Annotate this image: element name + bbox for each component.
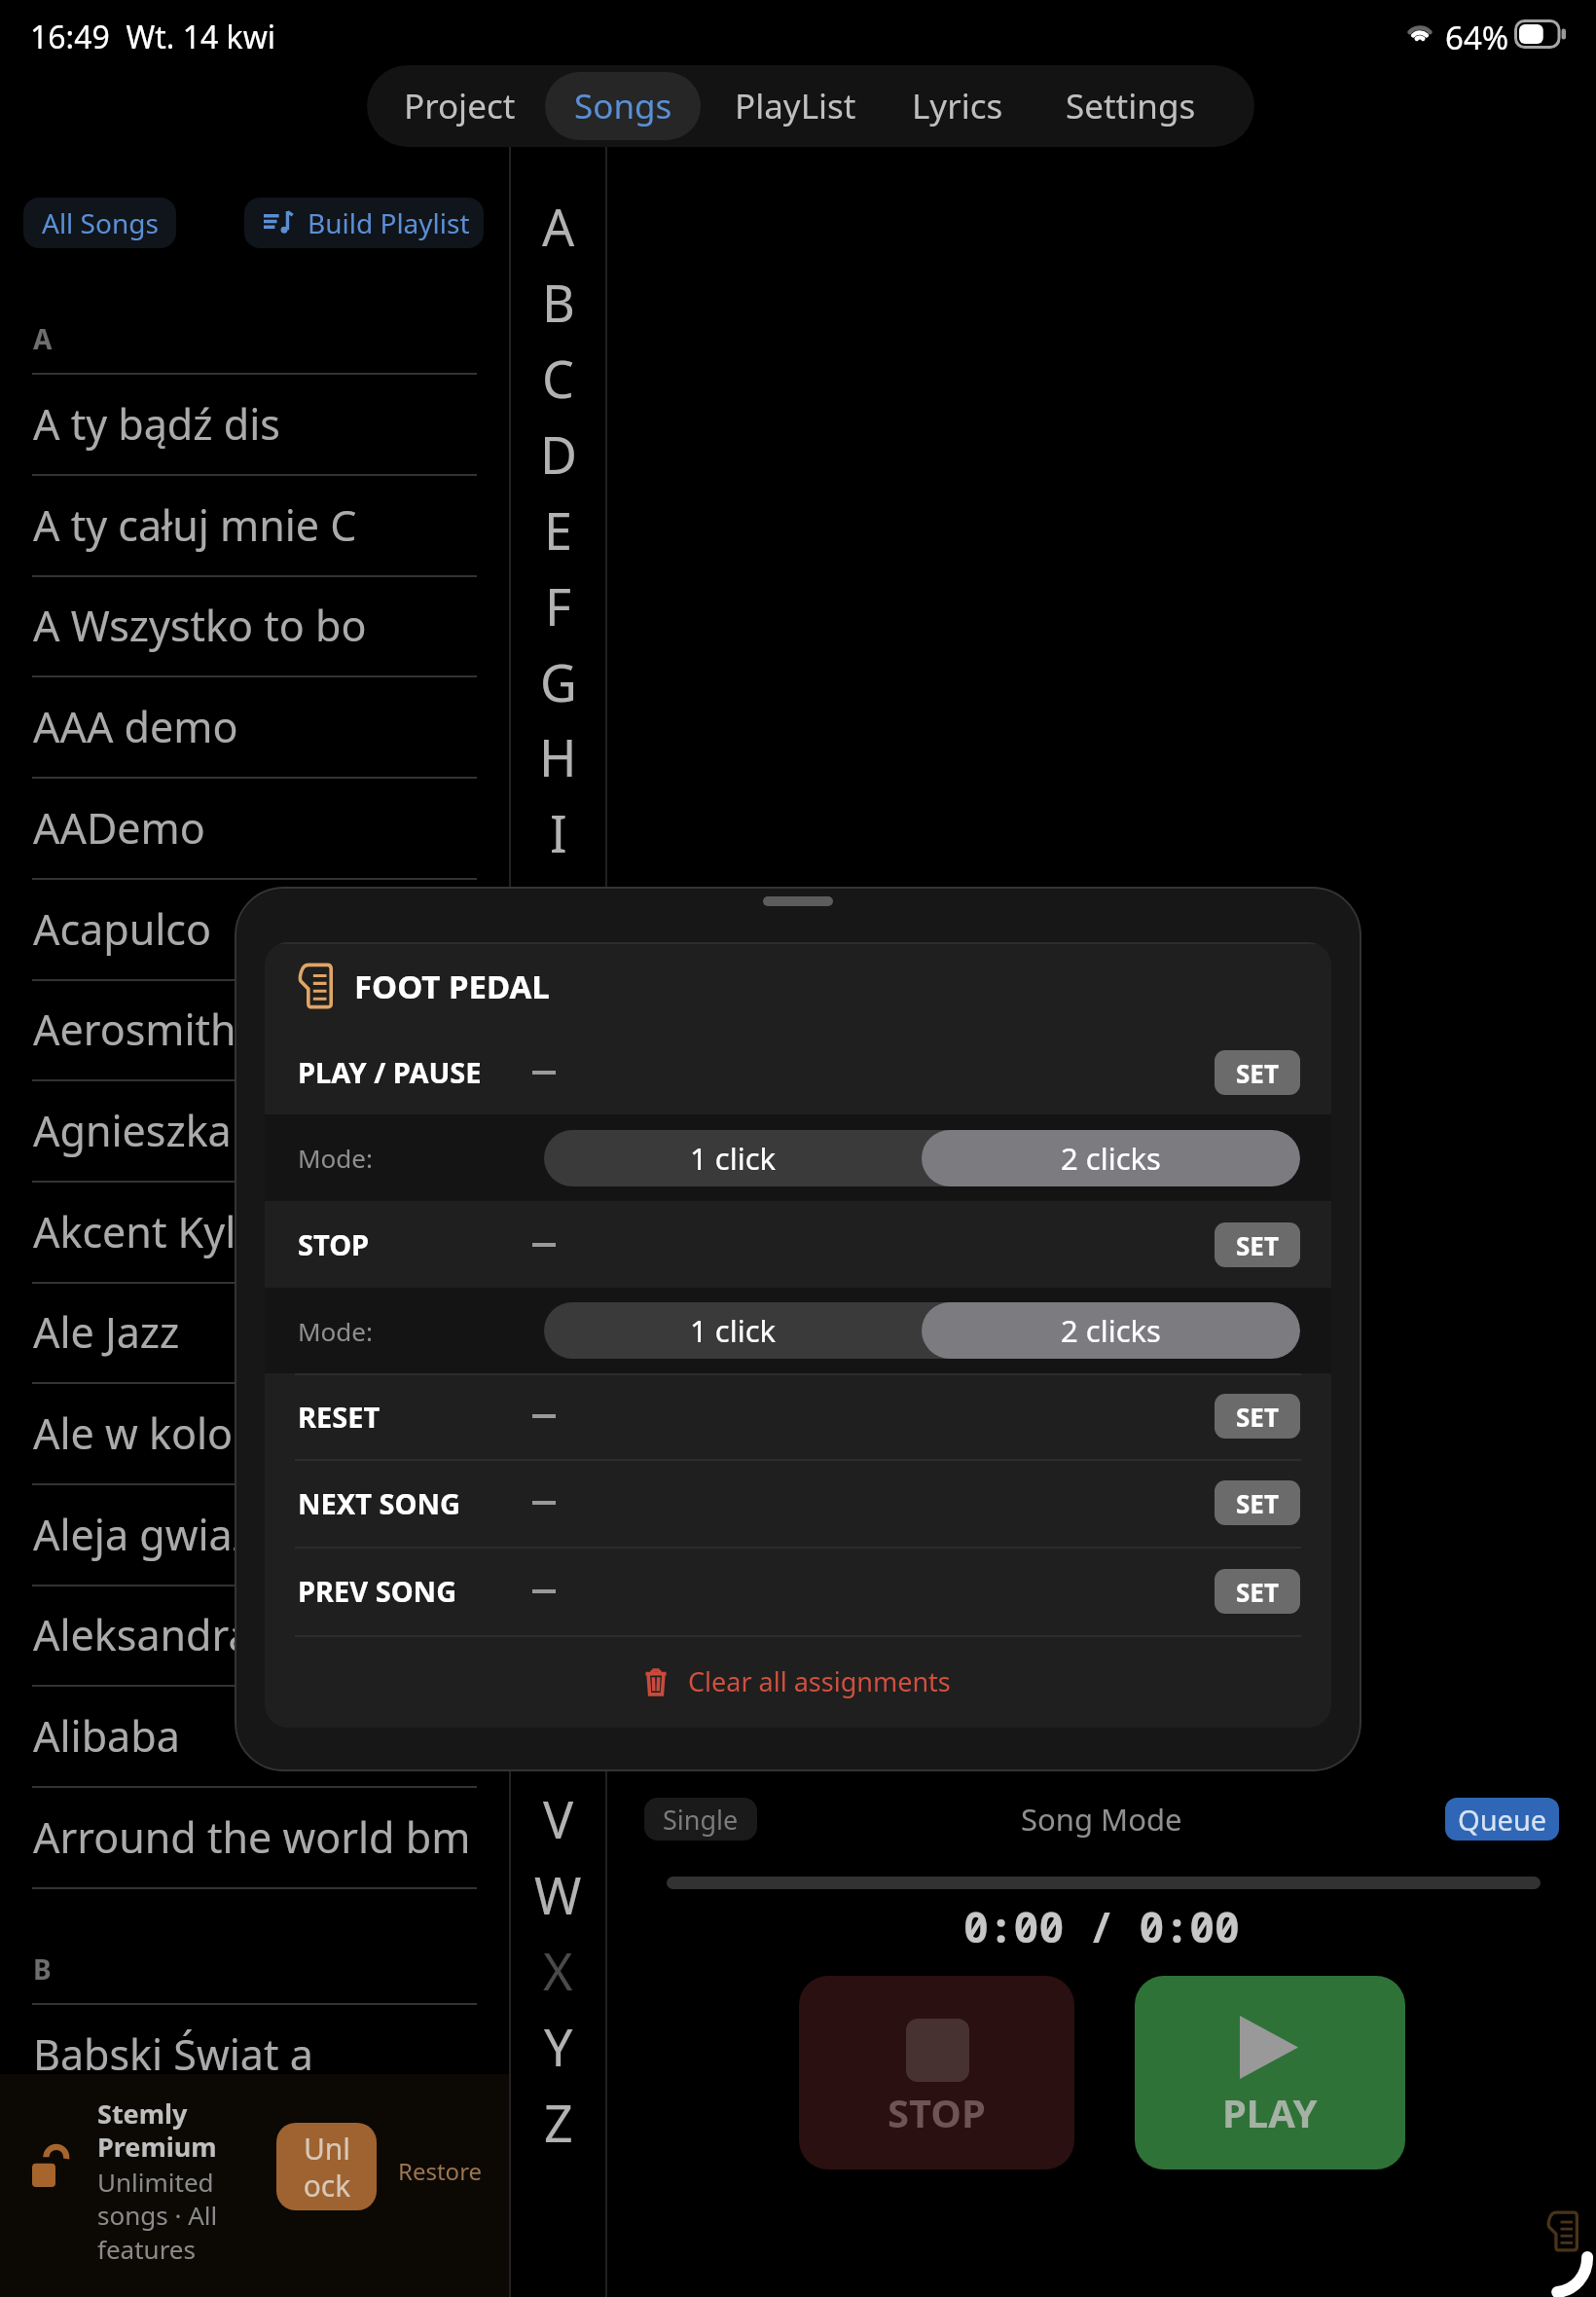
staticText: Aerosmith [33, 1001, 236, 1058]
button[interactable]: D [511, 416, 605, 492]
button[interactable]: C [511, 340, 605, 416]
button[interactable]: AADemo [0, 779, 509, 880]
button[interactable]: Queue [1445, 1798, 1559, 1841]
staticText: PLAY [1222, 2086, 1318, 2138]
button[interactable]: O [511, 1250, 605, 1326]
staticText: STOP [888, 2086, 986, 2138]
button[interactable]: Restore [398, 2155, 483, 2187]
button[interactable]: W [511, 1856, 605, 1932]
button[interactable]: Build Playlist [244, 198, 484, 248]
button[interactable]: Y [511, 2008, 605, 2084]
button[interactable]: Akcent Kyl [0, 1183, 509, 1284]
button[interactable]: A [511, 188, 605, 264]
staticText: Q [538, 1405, 578, 1475]
button[interactable]: Songs [545, 72, 701, 140]
button[interactable]: A ty bądź dis [0, 375, 509, 476]
button[interactable]: Unlock [276, 2123, 377, 2210]
button[interactable]: I [511, 794, 605, 870]
staticText: Settings [1066, 83, 1196, 129]
staticText: Akcent Kyl [33, 1203, 236, 1260]
button[interactable]: 2 clicks [922, 1302, 1300, 1359]
button[interactable]: P [511, 1326, 605, 1402]
button[interactable]: Acapulco [0, 880, 509, 981]
staticText: All Songs [42, 204, 159, 241]
button[interactable]: Ale Jazz [0, 1283, 509, 1384]
button[interactable]: A [0, 259, 509, 375]
button[interactable]: K [511, 946, 605, 1022]
staticText: R [542, 1481, 574, 1550]
button[interactable]: X [511, 1932, 605, 2008]
button[interactable]: F [511, 567, 605, 643]
button[interactable]: Aleja gwiaz [0, 1485, 509, 1586]
button[interactable]: M [511, 1098, 605, 1174]
staticText: PREV SONG [298, 1572, 457, 1610]
button[interactable]: L [511, 1022, 605, 1098]
button[interactable]: All Songs [23, 198, 176, 248]
button[interactable]: A ty całuj mnie C [0, 476, 509, 577]
button[interactable]: Aleksandra [0, 1586, 509, 1687]
button[interactable]: SET [1215, 1050, 1300, 1095]
button[interactable]: H [511, 718, 605, 794]
button[interactable]: B [0, 1889, 509, 2005]
button[interactable]: Clear all assignments [265, 1635, 1331, 1728]
staticText: E [544, 495, 572, 565]
staticText: Agnieszka [33, 1102, 232, 1159]
button[interactable]: Single [644, 1798, 757, 1841]
button[interactable]: Foot pedal [1546, 2210, 1578, 2252]
button[interactable]: SET [1215, 1394, 1300, 1439]
staticText: P [543, 1330, 574, 1399]
staticText: W [534, 1860, 582, 1929]
button[interactable]: E [511, 492, 605, 567]
button[interactable]: Settings [1035, 72, 1226, 140]
staticText: U [539, 1708, 577, 1777]
button[interactable]: N [511, 1174, 605, 1250]
button[interactable]: Ale w kolo [0, 1384, 509, 1485]
button[interactable]: S [511, 1553, 605, 1629]
staticText: J [551, 874, 565, 943]
button[interactable]: AAA demo [0, 677, 509, 779]
staticText: D [540, 419, 577, 489]
button[interactable]: J [511, 870, 605, 946]
button[interactable]: 2 clicks [922, 1130, 1300, 1186]
button[interactable]: STOP [799, 1976, 1074, 2169]
button[interactable]: SET [1215, 1480, 1300, 1525]
button[interactable]: Z [511, 2084, 605, 2160]
staticText: Ale w kolo [33, 1404, 234, 1462]
button[interactable]: Agnieszka [0, 1081, 509, 1183]
button[interactable]: SET [1215, 1222, 1300, 1267]
button[interactable]: Lyrics [884, 72, 1032, 140]
button[interactable]: 1 click [544, 1130, 922, 1186]
staticText: Y [544, 2012, 573, 2081]
staticText: 2 clicks [1061, 1310, 1161, 1351]
button[interactable]: U [511, 1704, 605, 1780]
button[interactable]: B [511, 264, 605, 340]
staticText: Project [404, 83, 516, 129]
staticText: B [33, 1951, 52, 1987]
button[interactable]: Alibaba [0, 1687, 509, 1788]
button[interactable]: G [511, 643, 605, 719]
staticText: Lyrics [912, 83, 1003, 129]
button[interactable]: PLAY [1135, 1976, 1405, 2169]
button[interactable]: SET [1215, 1569, 1300, 1614]
button[interactable]: Q [511, 1402, 605, 1477]
button[interactable]: 1 click [544, 1302, 922, 1359]
button[interactable]: Aerosmith [0, 980, 509, 1081]
button[interactable]: Babski Świat a [0, 2005, 509, 2106]
staticText: Queue [1458, 1801, 1547, 1839]
staticText: AADemo [33, 799, 205, 857]
button[interactable]: A Wszystko to bo [0, 576, 509, 677]
staticText: G [540, 647, 577, 716]
staticText: I [550, 798, 567, 867]
button[interactable]: Arround the world bm [0, 1788, 509, 1889]
staticText: Single [663, 1802, 739, 1838]
button[interactable]: Project [376, 72, 543, 140]
button[interactable]: Stemly Premium [0, 2074, 509, 2297]
button[interactable]: R [511, 1477, 605, 1553]
button[interactable]: V [511, 1780, 605, 1856]
staticText: Mode: [298, 1314, 373, 1348]
staticText: Clear all assignments [688, 1663, 951, 1699]
button[interactable]: PlayList [707, 72, 884, 140]
staticText: V [543, 1784, 574, 1853]
